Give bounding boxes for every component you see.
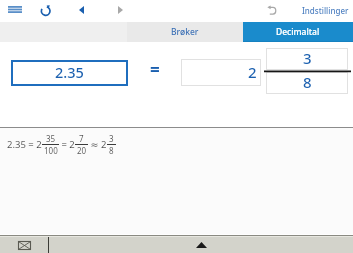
staticText: 3	[109, 133, 114, 144]
button[interactable]: Decimaltal	[243, 22, 353, 42]
staticText: 3	[303, 48, 312, 68]
staticText: =	[150, 58, 160, 81]
button[interactable]: 2.35	[11, 60, 128, 86]
staticText: 8	[303, 72, 312, 92]
button[interactable]: Reset	[33, 0, 58, 20]
staticText: Brøker	[171, 26, 199, 38]
button[interactable]: Mail	[0, 237, 48, 253]
button[interactable]: Undo	[260, 0, 284, 20]
button[interactable]: Indstillinger	[297, 0, 353, 20]
staticText: 2.35	[55, 62, 84, 82]
staticText: 2.35 = 2	[7, 138, 42, 151]
button[interactable]: 3	[266, 48, 348, 70]
staticText: = 2	[59, 138, 75, 151]
button[interactable]: Expand	[49, 237, 353, 253]
button[interactable]: Menu	[2, 0, 27, 20]
staticText: 100	[44, 145, 58, 156]
button[interactable]: Next	[108, 0, 132, 20]
button[interactable]: Previous	[69, 0, 93, 20]
button[interactable]: Brøker	[127, 22, 243, 42]
button[interactable]: 8	[266, 72, 348, 94]
staticText: Indstillinger	[302, 5, 349, 16]
button[interactable]: 2	[181, 59, 261, 86]
staticText: 7	[79, 133, 84, 144]
staticText: Decimaltal	[276, 26, 320, 38]
staticText: ≈ 2	[88, 138, 107, 151]
staticText: 8	[109, 145, 114, 156]
staticText: 2	[248, 62, 257, 82]
staticText: 20	[77, 145, 87, 156]
staticText: 35	[46, 133, 56, 144]
